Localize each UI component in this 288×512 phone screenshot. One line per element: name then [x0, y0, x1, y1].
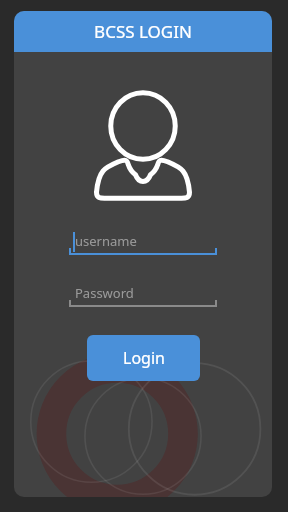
staticText: username: [75, 232, 137, 250]
staticText: Login: [123, 347, 165, 369]
staticText: BCSS LOGIN: [94, 20, 192, 43]
other: User avatar: [93, 91, 193, 201]
button[interactable]: Password: [69, 281, 217, 311]
staticText: Password: [75, 284, 134, 302]
button[interactable]: username: [69, 229, 217, 259]
button[interactable]: Login: [87, 335, 200, 381]
